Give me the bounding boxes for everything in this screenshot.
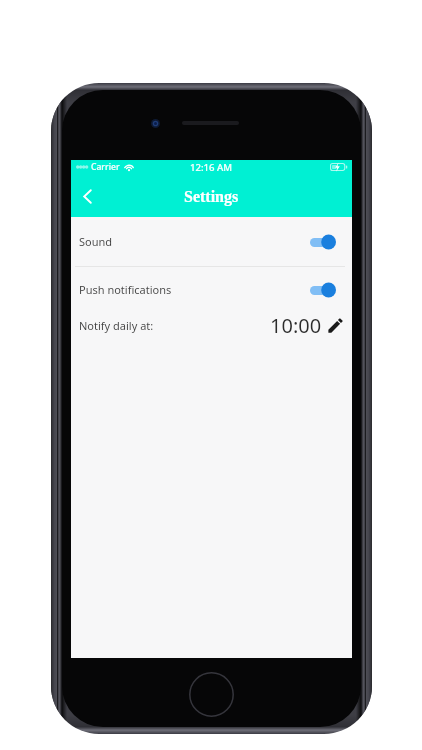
button[interactable]: Sound	[71, 217, 352, 266]
staticText: 10:00	[270, 312, 322, 338]
button[interactable]: Notify daily at:	[71, 312, 352, 338]
button[interactable]: Back	[72, 179, 102, 213]
staticText: Settings	[184, 188, 239, 206]
staticText: Push notifications	[79, 282, 172, 297]
button[interactable]: Toggle	[310, 234, 336, 250]
button[interactable]: Edit time	[326, 315, 345, 335]
button[interactable]: Push notifications	[71, 267, 352, 312]
staticText: Sound	[79, 234, 113, 249]
staticText: Carrier	[91, 161, 120, 173]
staticText: Notify daily at:	[79, 318, 154, 333]
staticText: 12:16 AM	[190, 161, 233, 174]
button[interactable]: Toggle	[310, 282, 336, 298]
